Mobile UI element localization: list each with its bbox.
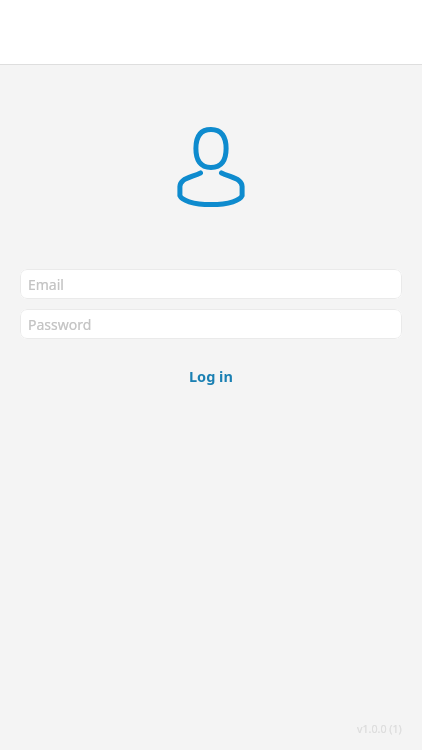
staticText: Password (28, 315, 92, 334)
staticText: Log in (189, 366, 233, 386)
staticText: Email (28, 275, 64, 294)
button[interactable]: Email (20, 269, 402, 299)
button[interactable]: Password (20, 309, 402, 339)
button[interactable]: Log in (173, 359, 249, 393)
staticText: v1.0.0 (1) (357, 722, 402, 737)
other: User avatar (177, 127, 246, 206)
